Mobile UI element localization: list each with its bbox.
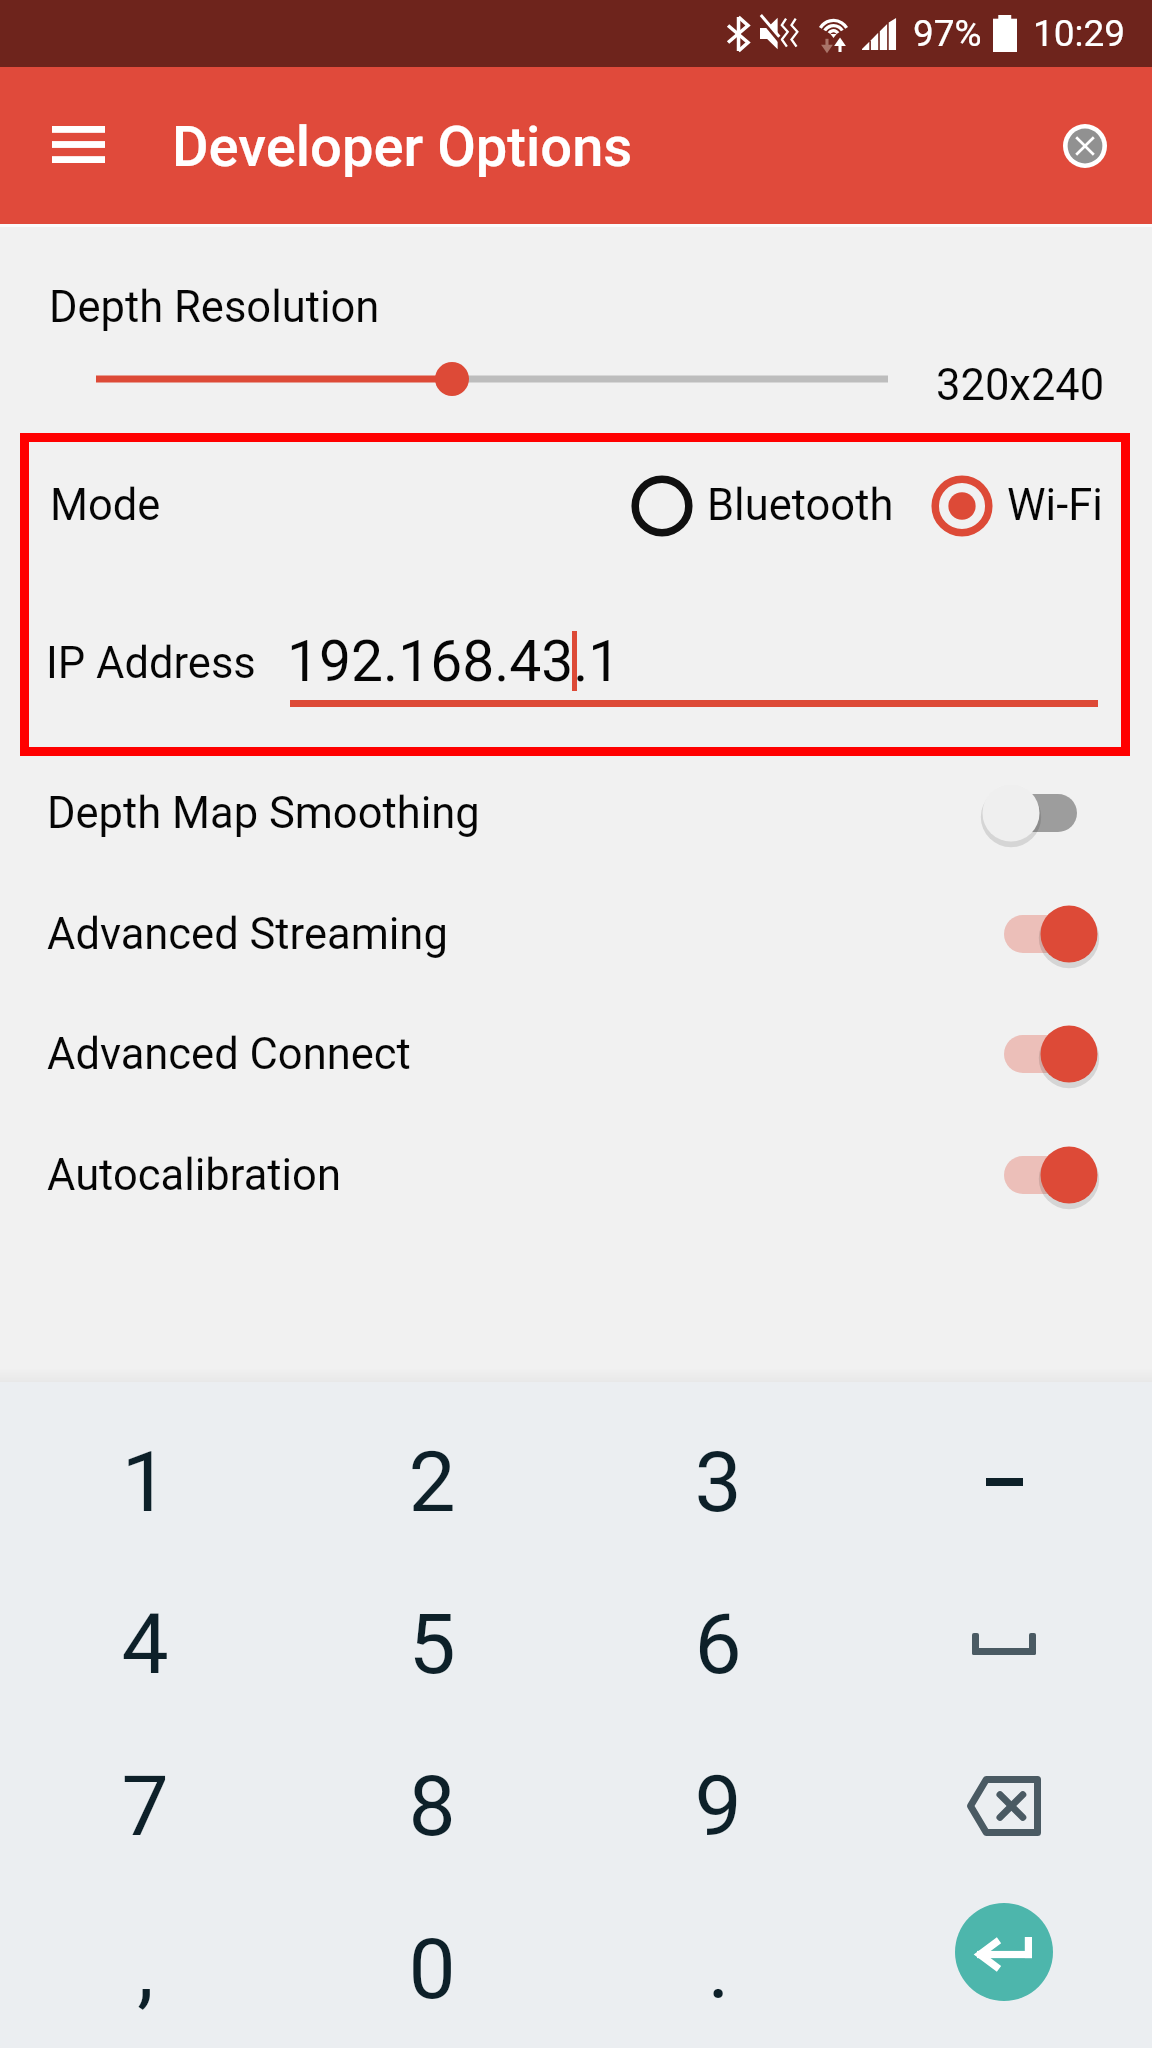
button[interactable]: 0 (289, 1888, 575, 2048)
staticText: 192.168.43.1 (287, 628, 621, 688)
staticText: Depth Map Smoothing (47, 788, 480, 839)
staticText: 2 (408, 1433, 456, 1531)
staticText: Wi-Fi (1007, 480, 1103, 531)
staticText: Depth Resolution (49, 282, 380, 333)
button[interactable]: Close (1040, 101, 1130, 191)
button[interactable]: Advanced Connect (0, 1006, 1152, 1102)
button[interactable]: 4 (2, 1563, 288, 1725)
button[interactable]: 2 (289, 1401, 575, 1563)
staticText: 9 (694, 1757, 742, 1855)
button[interactable]: Enter (955, 1903, 1053, 2001)
button[interactable]: 1 (2, 1401, 288, 1563)
button[interactable]: Depth resolution slider (0, 349, 910, 409)
staticText: 3 (694, 1433, 742, 1531)
button[interactable]: 3 (575, 1401, 861, 1563)
button[interactable]: 7 (2, 1725, 288, 1887)
staticText: Developer Options (172, 114, 633, 180)
button[interactable]: Backspace (861, 1725, 1147, 1887)
other: Space (972, 1633, 1036, 1655)
staticText: 6 (694, 1595, 742, 1693)
button[interactable]: 9 (575, 1725, 861, 1887)
staticText: Bluetooth (707, 480, 894, 531)
other: Backspace (967, 1776, 1041, 1836)
button[interactable]: Bluetooth (631, 475, 894, 535)
staticText: 0 (408, 1920, 456, 2018)
staticText: . (707, 1920, 730, 2018)
button[interactable]: 5 (289, 1563, 575, 1725)
button[interactable]: Open navigation menu (26, 94, 130, 198)
button[interactable]: 8 (289, 1725, 575, 1887)
staticText: Advanced Connect (47, 1029, 411, 1080)
button[interactable]: 192.168.43.1 (290, 625, 1098, 685)
staticText: , (137, 1920, 154, 2018)
staticText: 4 (121, 1595, 169, 1693)
staticText: Mode (50, 480, 161, 531)
button[interactable]: Advanced Streaming (0, 886, 1152, 982)
staticText: 5 (408, 1595, 456, 1693)
button[interactable]: Enter (861, 1871, 1147, 2033)
button[interactable]: Depth Map Smoothing (0, 765, 1152, 861)
button[interactable]: Wi-Fi (931, 475, 1103, 535)
staticText: 7 (121, 1757, 169, 1855)
button[interactable]: . (575, 1888, 861, 2048)
staticText: 97% (913, 12, 982, 55)
button[interactable]: 6 (575, 1563, 861, 1725)
staticText: 8 (408, 1757, 456, 1855)
staticText: Autocalibration (47, 1150, 341, 1201)
staticText: 1 (121, 1433, 169, 1531)
button[interactable]: Autocalibration (0, 1127, 1152, 1223)
staticText: 10:29 (1033, 12, 1126, 55)
staticText: 320x240 (936, 360, 1105, 411)
staticText: Advanced Streaming (47, 909, 448, 960)
button[interactable]: Minus (861, 1401, 1147, 1563)
staticText: IP Address (46, 638, 256, 689)
button[interactable]: , (2, 1888, 288, 2048)
button[interactable]: Space (861, 1563, 1147, 1725)
